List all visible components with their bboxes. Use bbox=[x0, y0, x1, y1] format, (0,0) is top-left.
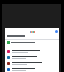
button[interactable] bbox=[6, 60, 59, 66]
button[interactable]: Account bbox=[55, 30, 58, 33]
button[interactable] bbox=[6, 48, 59, 54]
button[interactable] bbox=[7, 41, 59, 44]
button[interactable] bbox=[6, 54, 59, 60]
button[interactable] bbox=[6, 66, 59, 72]
